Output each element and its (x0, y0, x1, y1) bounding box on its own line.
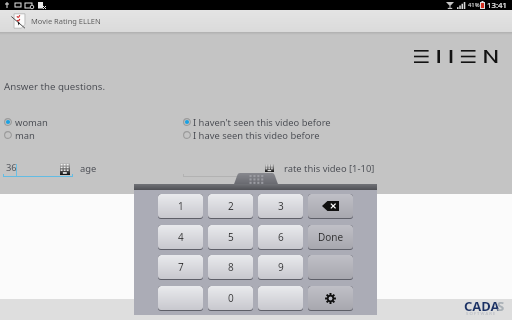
staticText: rate this video [1-10] (284, 162, 375, 175)
button[interactable]: I have seen this video before (181, 129, 320, 141)
button[interactable]: man (2, 129, 35, 141)
button[interactable]: 9 (258, 255, 303, 279)
staticText: 36 (6, 161, 17, 174)
staticText: I haven't seen this video before (193, 116, 331, 128)
staticText: 41% (468, 1, 480, 9)
button[interactable]: Backspace (308, 194, 353, 218)
staticText: I have seen this video before (193, 129, 320, 141)
staticText: 1 (178, 199, 184, 213)
staticText: 4 (178, 230, 184, 244)
button[interactable]: 6 (258, 225, 303, 249)
staticText: woman (15, 116, 48, 128)
staticText: 8 (228, 260, 234, 274)
button[interactable]: 0 (208, 286, 253, 310)
button[interactable]: I haven't seen this video before (181, 116, 331, 128)
button[interactable]: Key (258, 286, 303, 310)
staticText: age (80, 162, 97, 175)
staticText: 13:41 (487, 0, 507, 10)
staticText: S O F T W A R E (466, 311, 496, 317)
staticText: man (15, 129, 35, 141)
button[interactable]: 3 (258, 194, 303, 218)
staticText: 2 (228, 199, 234, 213)
button[interactable]: Done (308, 225, 353, 249)
button[interactable]: woman (2, 116, 48, 128)
staticText: 7 (178, 260, 184, 274)
staticText: 5 (228, 230, 234, 244)
staticText: 0 (228, 291, 234, 305)
button[interactable]: Keyboard settings (308, 286, 353, 310)
staticText: Answer the questions. (4, 80, 106, 93)
staticText: 3 (278, 199, 284, 213)
staticText: Movie Rating ELLEN (31, 16, 101, 26)
staticText: CADA (464, 297, 500, 315)
button[interactable]: Movie Rating ELLEN (0, 10, 512, 32)
button[interactable]: Key (158, 286, 203, 310)
button[interactable]: Key (308, 255, 353, 279)
staticText: 9 (278, 260, 284, 274)
button[interactable]: 4 (158, 225, 203, 249)
button[interactable]: 7 (158, 255, 203, 279)
staticText: Done (318, 230, 344, 244)
button[interactable]: 1 (158, 194, 203, 218)
staticText: 6 (278, 230, 284, 244)
button[interactable]: 8 (208, 255, 253, 279)
button[interactable]: 5 (208, 225, 253, 249)
staticText: S (497, 297, 505, 315)
button[interactable]: 2 (208, 194, 253, 218)
